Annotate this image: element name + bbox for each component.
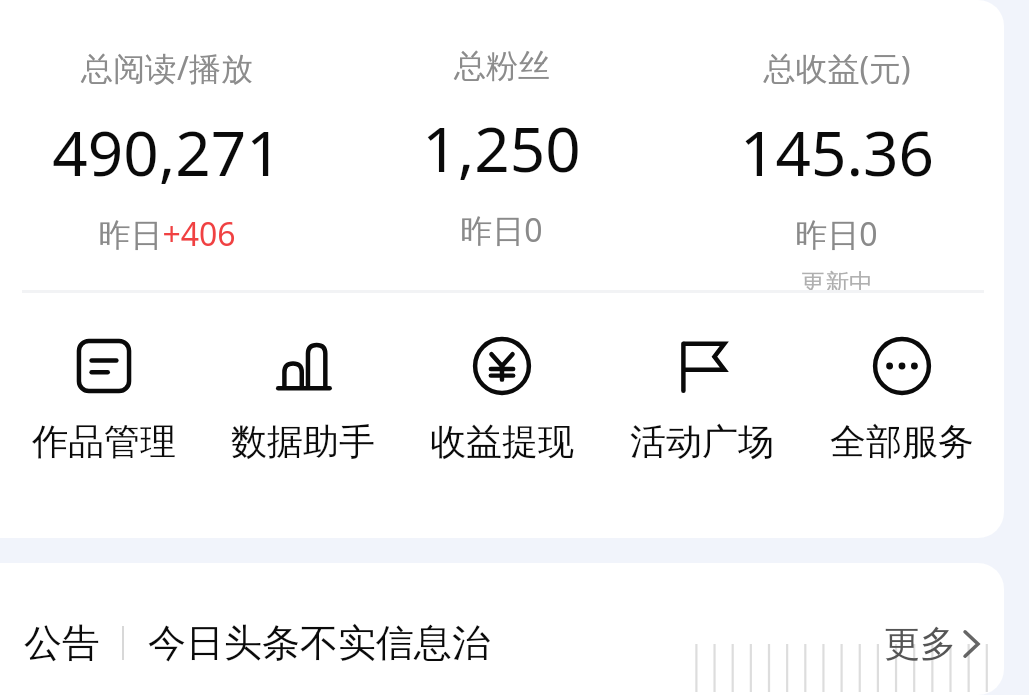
- staticText: 公告: [24, 619, 100, 667]
- button[interactable]: 活动广场: [602, 331, 802, 468]
- other: 全部服务: [871, 335, 933, 397]
- button[interactable]: 作品管理: [4, 331, 203, 468]
- staticText: 更新中: [801, 268, 873, 290]
- button[interactable]: 公告: [0, 595, 1004, 691]
- other: 数据助手: [272, 335, 334, 397]
- staticText: 总粉丝: [454, 46, 550, 86]
- staticText: 活动广场: [630, 419, 774, 464]
- button[interactable]: 总收益(元): [669, 0, 1004, 290]
- staticText: 总收益(元): [763, 46, 911, 90]
- staticText: 全部服务: [830, 419, 974, 464]
- button[interactable]: 全部服务: [802, 331, 1002, 468]
- staticText: 更多: [884, 621, 956, 666]
- staticText: 作品管理: [32, 419, 176, 464]
- staticText: 145.36: [740, 110, 934, 194]
- button[interactable]: 总粉丝: [334, 0, 669, 252]
- staticText: 今日头条不实信息治理公告（20…: [148, 619, 516, 667]
- staticText: 490,271: [52, 110, 282, 194]
- other: 作品管理: [73, 335, 135, 397]
- button[interactable]: 收益提现: [402, 331, 602, 468]
- staticText: 1,250: [422, 106, 581, 190]
- staticText: 收益提现: [430, 419, 574, 464]
- other: 收益提现: [471, 335, 533, 397]
- button[interactable]: 总阅读/播放: [0, 0, 334, 256]
- staticText: 昨日0: [795, 212, 878, 256]
- button[interactable]: 数据助手: [203, 331, 402, 468]
- staticText: 昨日+406: [98, 212, 236, 256]
- other: 活动广场: [671, 335, 733, 397]
- staticText: 昨日0: [460, 208, 543, 252]
- staticText: 数据助手: [231, 419, 375, 464]
- staticText: 总阅读/播放: [81, 46, 253, 90]
